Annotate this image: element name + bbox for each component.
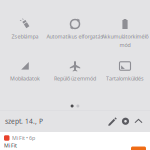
staticText: Akkumulátorkímélő — [101, 33, 148, 40]
staticText: mód — [119, 41, 130, 48]
button[interactable]: Automatikus elforgatás — [50, 18, 100, 60]
staticText: Zseblámpa — [11, 33, 38, 40]
button[interactable]: Repülő üzemmód — [50, 60, 100, 102]
button[interactable]: Akkumulátorkímélő — [100, 18, 150, 60]
button[interactable]: Edit — [106, 115, 119, 128]
staticText: Mi Fit • 6p — [12, 134, 35, 142]
staticText: Automatikus elforgatás — [46, 33, 103, 40]
button[interactable]: Collapse — [132, 115, 145, 128]
button[interactable]: Mobiladatok — [0, 60, 50, 102]
staticText: Mi Fit — [4, 142, 17, 149]
button[interactable]: Zseblámpa — [0, 18, 50, 60]
staticText: Tartalomküldés — [106, 75, 144, 82]
staticText: Mobiladatok — [10, 75, 40, 82]
button[interactable]: Settings — [119, 115, 132, 128]
staticText: Repülő üzemmód — [54, 75, 96, 82]
staticText: szept. 14., P — [5, 117, 43, 126]
button[interactable]: Tartalomküldés — [100, 60, 150, 102]
button[interactable]: Mi Fit • 6p — [0, 132, 150, 150]
